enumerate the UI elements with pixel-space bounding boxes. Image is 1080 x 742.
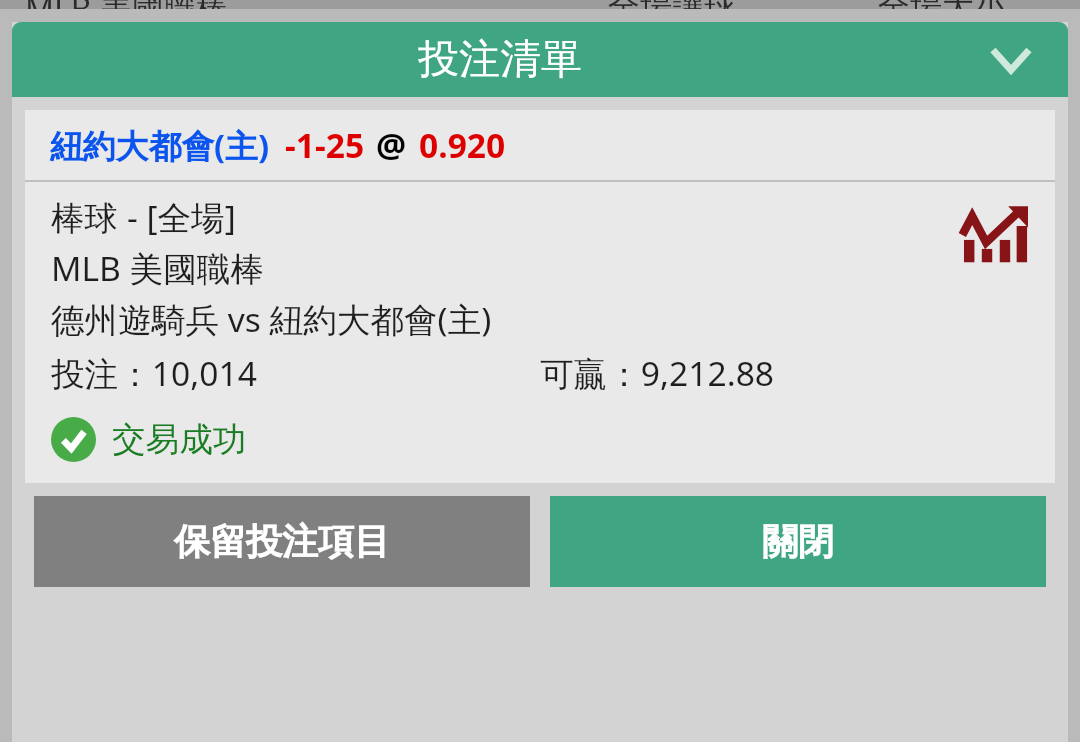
staticText: 全場讓球 (608, 0, 736, 9)
staticText: 德州遊騎兵 vs 紐約大都會(主) (51, 296, 492, 342)
staticText: MLB 美國職棒 (51, 245, 265, 291)
staticText: 交易成功 (112, 419, 247, 461)
staticText: 0.920 (419, 122, 506, 168)
button[interactable]: 保留投注項目 (34, 496, 530, 587)
staticText: 投注：10,014 (51, 350, 257, 396)
staticText: 關閉 (762, 519, 834, 564)
button[interactable]: Collapse bet slip (975, 24, 1047, 96)
staticText: @ (376, 122, 407, 168)
button[interactable]: 關閉 (550, 496, 1046, 587)
staticText: 保留投注項目 (174, 519, 390, 564)
staticText: -1-25 (285, 122, 365, 168)
staticText: MLB 美國職棒 (25, 0, 228, 9)
staticText: 紐約大都會(主) (50, 123, 270, 168)
staticText: 棒球 - [全場] (51, 194, 236, 240)
staticText: 投注清單 (418, 34, 582, 86)
button[interactable]: Live statistics (962, 206, 1028, 264)
button[interactable]: 紐約大都會(主) (25, 110, 1055, 180)
staticText: 全場大小 (878, 0, 1006, 9)
staticText: 可贏：9,212.88 (540, 350, 775, 396)
